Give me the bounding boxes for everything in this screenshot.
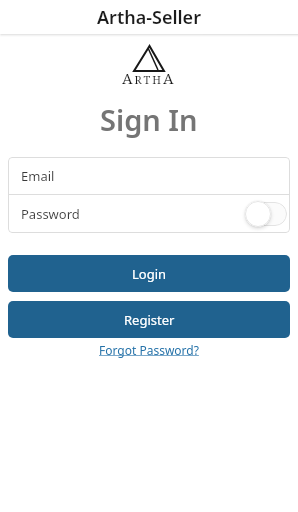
- button[interactable]: Password: [8, 195, 290, 233]
- staticText: Sign In: [100, 100, 198, 139]
- staticText: Register: [124, 311, 175, 329]
- button[interactable]: Forgot Password?: [99, 342, 199, 358]
- staticText: Artha-Seller: [97, 5, 201, 30]
- staticText: Login: [132, 265, 167, 283]
- button[interactable]: Email: [8, 157, 290, 194]
- staticText: Email: [21, 167, 55, 185]
- button[interactable]: Login: [8, 255, 290, 292]
- button[interactable]: Register: [8, 301, 290, 338]
- staticText: Password: [21, 205, 80, 223]
- staticText: ARTHA: [122, 68, 176, 88]
- button[interactable]: [245, 201, 287, 227]
